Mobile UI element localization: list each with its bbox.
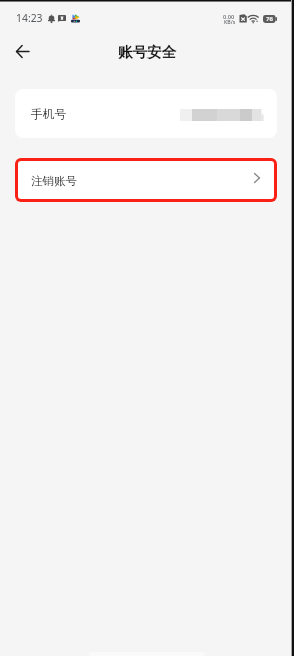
staticText: 76 xyxy=(266,15,273,23)
staticText: 账号安全 xyxy=(118,43,176,61)
staticText: KB/s xyxy=(224,18,236,25)
button[interactable]: Back xyxy=(7,36,37,66)
staticText: 手机号 xyxy=(31,107,67,122)
staticText: 0.00 xyxy=(223,13,235,21)
staticText: 注销账号 xyxy=(31,174,77,188)
staticText: 14:23 xyxy=(16,11,43,25)
button[interactable]: 手机号 xyxy=(15,89,277,138)
button[interactable]: 注销账号 xyxy=(18,161,274,199)
